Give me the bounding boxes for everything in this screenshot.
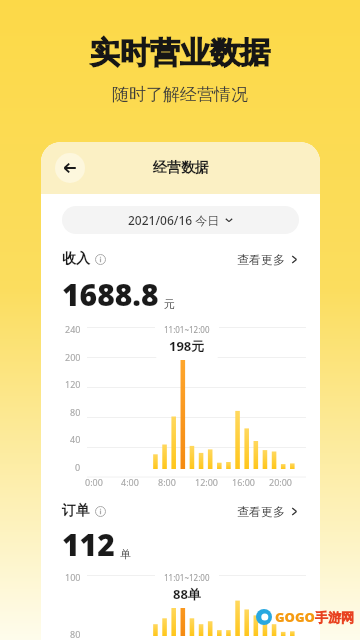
staticText: 88单 xyxy=(173,585,201,603)
staticText: GO xyxy=(295,608,315,626)
button[interactable]: 2021/06/16 今日 xyxy=(62,206,299,234)
staticText: 经营数据 xyxy=(153,159,209,177)
staticText: 手游网 xyxy=(315,609,354,625)
staticText: 元 xyxy=(164,297,175,311)
staticText: 查看更多 xyxy=(237,504,285,519)
staticText: 随时了解经营情况 xyxy=(112,84,248,105)
staticText: 收入 xyxy=(62,250,90,268)
staticText: 1688.8 xyxy=(62,274,159,315)
staticText: 12:00 xyxy=(195,476,219,488)
staticText: 20:00 xyxy=(269,476,293,488)
staticText: 198元 xyxy=(169,337,205,355)
staticText: 200 xyxy=(65,351,81,363)
staticText: 单 xyxy=(120,547,131,561)
staticText: 0:00 xyxy=(85,476,103,488)
staticText: GO xyxy=(275,608,295,626)
button[interactable]: 查看更多 xyxy=(237,252,299,267)
other: Info xyxy=(95,506,106,517)
staticText: 80 xyxy=(70,406,81,418)
staticText: 8:00 xyxy=(158,476,176,488)
staticText: 11:01~12:00 xyxy=(164,572,210,583)
staticText: 80 xyxy=(70,628,81,640)
staticText: 0 xyxy=(75,461,81,473)
staticText: 112 xyxy=(62,524,115,565)
staticText: 4:00 xyxy=(121,476,139,488)
button[interactable]: 查看更多 xyxy=(237,504,299,519)
staticText: 订单 xyxy=(62,502,90,520)
staticText: 100 xyxy=(65,571,81,583)
staticText: 2021/06/16 今日 xyxy=(128,212,220,228)
staticText: 11:01~12:00 xyxy=(164,324,210,335)
staticText: 16:00 xyxy=(232,476,256,488)
staticText: 40 xyxy=(70,433,81,445)
button[interactable]: Back xyxy=(55,153,85,183)
staticText: 查看更多 xyxy=(237,252,285,267)
staticText: 120 xyxy=(65,378,81,390)
staticText: 240 xyxy=(65,323,81,335)
staticText: 实时营业数据 xyxy=(90,34,270,72)
other: Info xyxy=(95,254,106,265)
